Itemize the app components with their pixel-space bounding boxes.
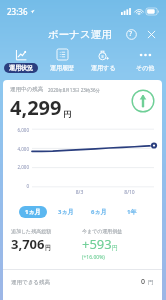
staticText: 8/3 xyxy=(54,189,105,196)
staticText: 円 xyxy=(45,244,51,252)
staticText: 23:36 xyxy=(7,6,28,17)
staticText: 0 xyxy=(141,277,146,287)
button[interactable]: ヘルプ xyxy=(122,25,140,43)
staticText: 運用中の残高 xyxy=(10,86,44,93)
staticText: 4,299 xyxy=(10,94,62,121)
staticText: 3ヵ月 xyxy=(58,208,74,216)
staticText: +593 xyxy=(82,235,112,253)
staticText: 8/10 xyxy=(105,189,154,196)
staticText: 円 xyxy=(63,109,71,119)
staticText: 1年 xyxy=(127,208,137,216)
staticText: 運用する xyxy=(91,64,116,72)
staticText: 円 xyxy=(148,279,154,286)
staticText: 2020年8月13日 23時36分 xyxy=(48,87,100,93)
staticText: 6ヵ月 xyxy=(91,208,107,216)
button[interactable]: 閉じる xyxy=(142,25,160,43)
staticText: その他 xyxy=(136,64,155,72)
staticText: 4,000 xyxy=(17,146,29,152)
staticText: ボーナス運用 xyxy=(48,28,112,41)
staticText: 円 xyxy=(112,244,118,252)
staticText: 3,706 xyxy=(11,235,45,253)
button[interactable]: 運用履歴 xyxy=(41,46,82,77)
staticText: 追加した残高総額 xyxy=(11,228,52,234)
staticText: 2,000 xyxy=(17,164,29,170)
button[interactable]: 増加 xyxy=(131,89,155,113)
staticText: 運用履歴 xyxy=(50,64,74,72)
button[interactable]: 運用状況 xyxy=(0,46,41,77)
staticText: 0 xyxy=(26,183,29,189)
staticText: 運用できる残高 xyxy=(11,279,50,286)
button[interactable]: 運用する xyxy=(82,46,124,77)
staticText: ? xyxy=(129,29,133,39)
staticText: (+16.00%) xyxy=(82,254,105,261)
button[interactable]: その他 xyxy=(124,46,166,77)
staticText: 運用状況 xyxy=(9,64,33,72)
staticText: 6,000 xyxy=(17,127,29,133)
staticText: 今までの運用損益 xyxy=(82,228,123,234)
button[interactable]: 運用できる残高 xyxy=(3,270,162,294)
staticText: 1ヵ月 xyxy=(25,208,41,216)
button[interactable]: 1ヵ月 xyxy=(19,206,47,218)
button[interactable]: 6ヵ月 xyxy=(85,206,113,218)
button[interactable]: 3ヵ月 xyxy=(52,206,80,218)
button[interactable]: 1年 xyxy=(121,206,143,218)
